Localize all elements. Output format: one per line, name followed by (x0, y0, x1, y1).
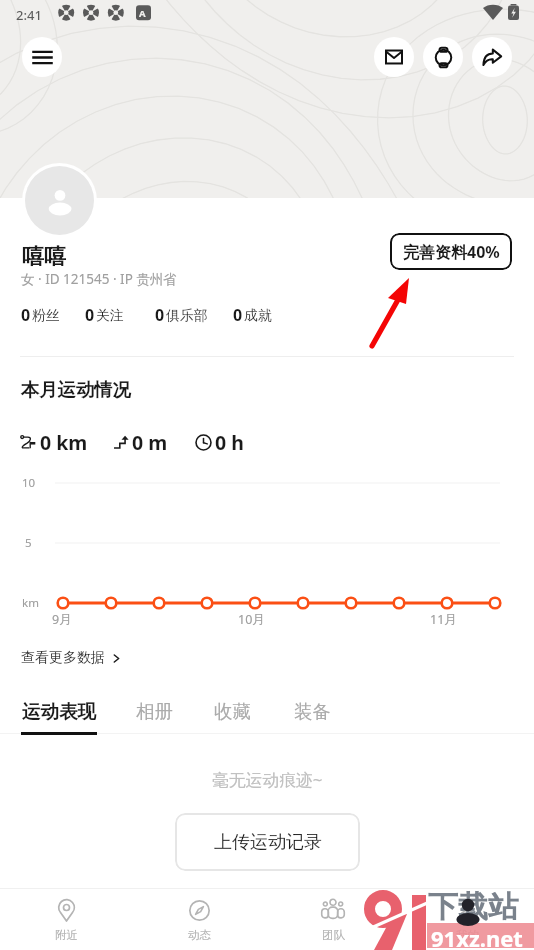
staticText: 10 (22, 475, 36, 491)
button[interactable]: Messages (374, 37, 414, 77)
button[interactable]: 收藏 (214, 700, 251, 732)
button[interactable]: Menu (22, 37, 62, 77)
button[interactable]: 运动表现 (21, 700, 97, 735)
staticText: A (139, 7, 146, 20)
button[interactable]: 动态 (133, 889, 266, 950)
staticText: 成就 (244, 307, 272, 324)
button[interactable]: Share (472, 37, 512, 77)
button[interactable]: 0 (155, 304, 208, 326)
staticText: 查看更多数据 (21, 649, 105, 667)
staticText: 下载站 (428, 888, 518, 926)
button[interactable] (25, 166, 94, 235)
button[interactable]: 我的 (400, 889, 534, 950)
staticText: 毫无运动痕迹~ (212, 768, 323, 791)
button[interactable]: 查看更多数据 (21, 649, 122, 667)
staticText: 5 (25, 535, 32, 551)
staticText: 10月 (238, 611, 265, 628)
staticText: 0 (21, 304, 31, 326)
button[interactable]: 上传运动记录 (175, 813, 360, 871)
button[interactable]: 0 (85, 304, 124, 326)
staticText: 完善资料40% (403, 241, 500, 263)
staticText: 0 (85, 304, 95, 326)
button[interactable]: 0 (233, 304, 272, 326)
staticText: 动态 (188, 928, 211, 942)
button[interactable]: 完善资料40% (390, 233, 512, 270)
staticText: 女 · ID 121545 · IP 贵州省 (21, 270, 177, 288)
staticText: 0 m (132, 429, 168, 456)
staticText: 装备 (294, 700, 331, 723)
staticText: 相册 (136, 700, 173, 723)
button[interactable]: 0 (21, 304, 60, 326)
staticText: 附近 (55, 928, 78, 942)
button[interactable]: 团队 (266, 889, 400, 950)
staticText: 粉丝 (32, 307, 60, 324)
staticText: 我的 (456, 928, 479, 942)
staticText: 俱乐部 (166, 307, 208, 324)
staticText: 9月 (52, 611, 72, 628)
staticText: 嘻嘻 (22, 243, 66, 271)
staticText: 0 (233, 304, 243, 326)
button[interactable]: 附近 (0, 889, 133, 950)
staticText: 团队 (322, 928, 345, 942)
staticText: 上传运动记录 (214, 831, 322, 854)
staticText: 0 km (40, 429, 88, 456)
staticText: km (22, 595, 39, 611)
button[interactable]: 相册 (136, 700, 173, 732)
button[interactable]: 装备 (294, 700, 331, 732)
staticText: 11月 (430, 611, 457, 628)
staticText: 关注 (96, 307, 124, 324)
staticText: 收藏 (214, 700, 251, 723)
staticText: 91xz.net (431, 923, 523, 950)
staticText: 本月运动情况 (21, 378, 131, 401)
button[interactable]: Watch (423, 37, 463, 77)
staticText: 0 (155, 304, 165, 326)
staticText: 0 h (215, 429, 244, 456)
staticText: 运动表现 (22, 700, 96, 723)
staticText: 2:41 (16, 6, 42, 24)
